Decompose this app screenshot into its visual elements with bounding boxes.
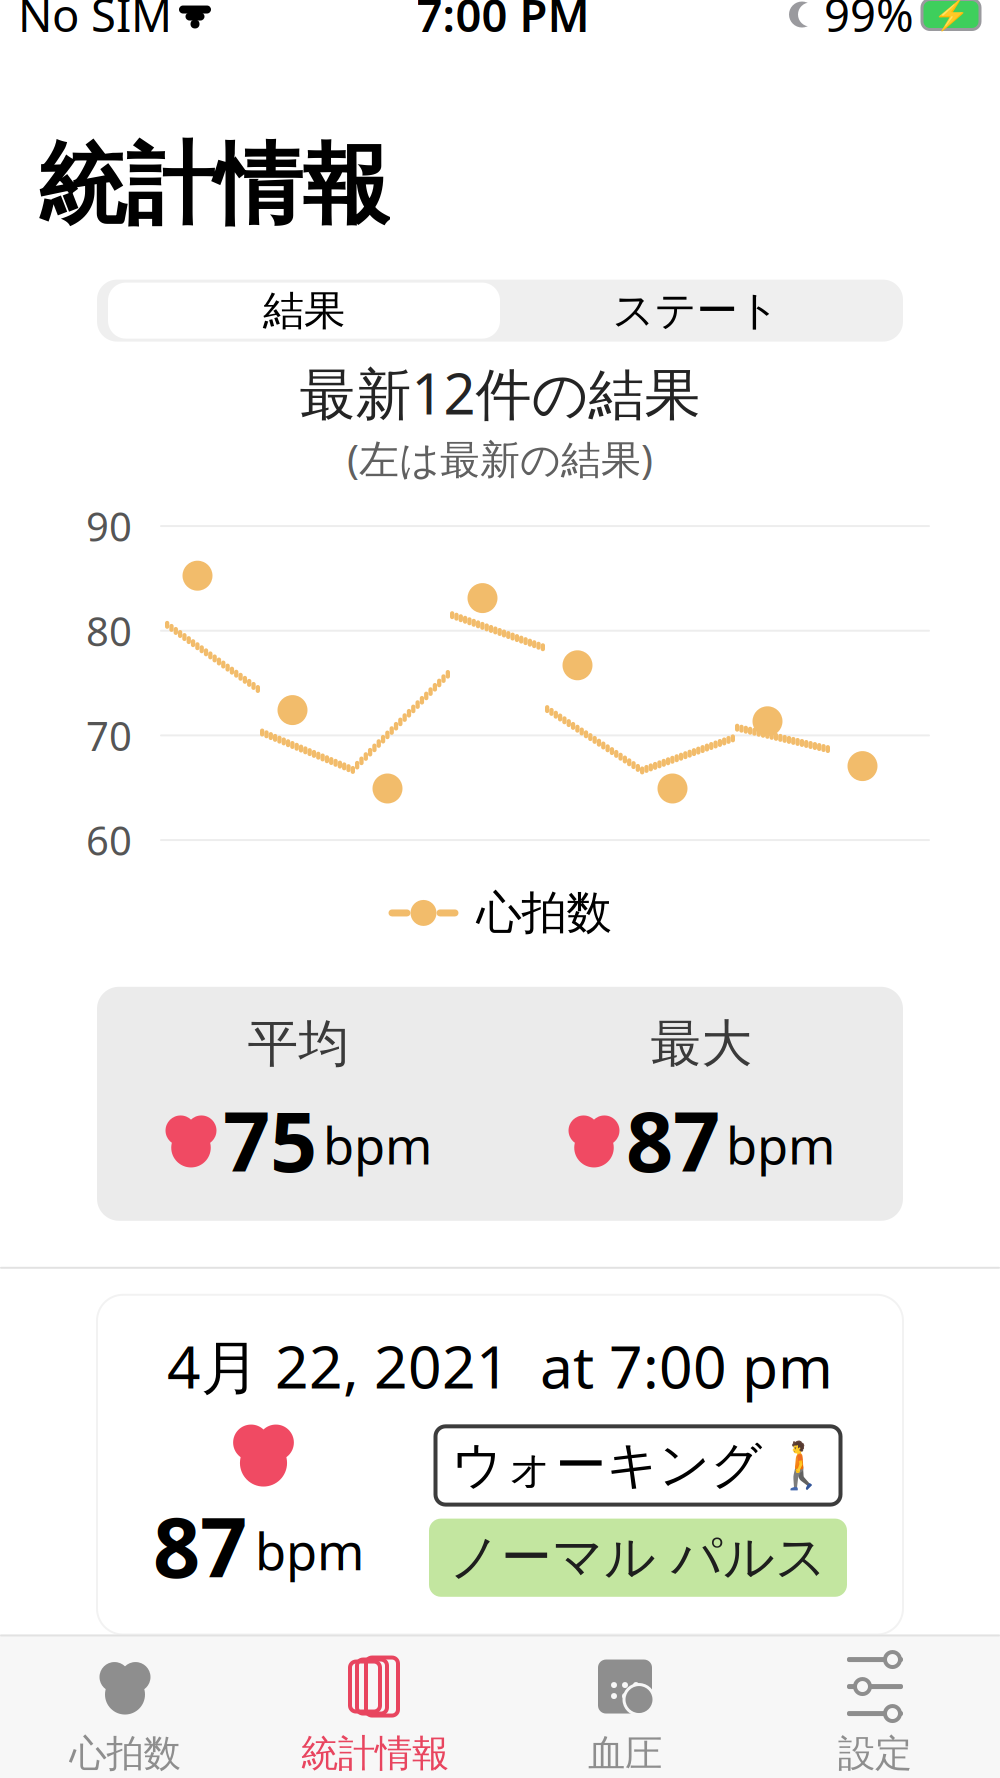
staticText: 心拍数 [476, 885, 611, 941]
staticText: 87 [153, 1491, 247, 1600]
button[interactable]: ステート [500, 283, 892, 339]
staticText: (左は最新の結果) [347, 432, 653, 485]
button[interactable]: 設定 [750, 1656, 1000, 1772]
staticText: bpm [323, 1111, 432, 1179]
staticText: ステート [612, 285, 779, 336]
staticText: 心拍数 [69, 1730, 180, 1776]
staticText: 4月 22, 2021 at 7:00 pm [167, 1327, 833, 1405]
staticText: ノーマル パルス [449, 1527, 827, 1589]
staticText: 統計情報 [38, 131, 390, 240]
staticText: 平均 [247, 1013, 349, 1075]
button[interactable]: 4月 22, 2021 at 7:00 pm [97, 1295, 903, 1634]
staticText: 60 [86, 813, 132, 867]
staticText: ⚡ [932, 0, 969, 31]
staticText: 90 [86, 499, 132, 553]
staticText: 87 [626, 1085, 720, 1195]
staticText: 80 [86, 604, 132, 657]
staticText: bpm [726, 1111, 835, 1179]
staticText: 🚶 [772, 1440, 828, 1491]
button[interactable]: 心拍数 [0, 1656, 250, 1772]
staticText: 99% [824, 0, 914, 45]
staticText: 設定 [838, 1730, 912, 1776]
staticText: 血圧 [588, 1730, 662, 1776]
staticText: 70 [86, 709, 132, 762]
staticText: 75 [223, 1085, 317, 1195]
staticText: 最新12件の結果 [299, 356, 700, 430]
staticText: ウォーキング [451, 1434, 762, 1497]
staticText: 結果 [263, 285, 345, 336]
staticText: bpm [255, 1517, 364, 1584]
button[interactable]: 統計情報 [250, 1656, 500, 1772]
staticText: 7:00 PM [416, 0, 589, 45]
button[interactable]: 血圧 [500, 1656, 750, 1772]
button[interactable]: 結果 [108, 283, 500, 339]
staticText: 最大 [650, 1013, 752, 1075]
staticText: No SIM [18, 0, 172, 45]
staticText: 統計情報 [301, 1730, 449, 1776]
